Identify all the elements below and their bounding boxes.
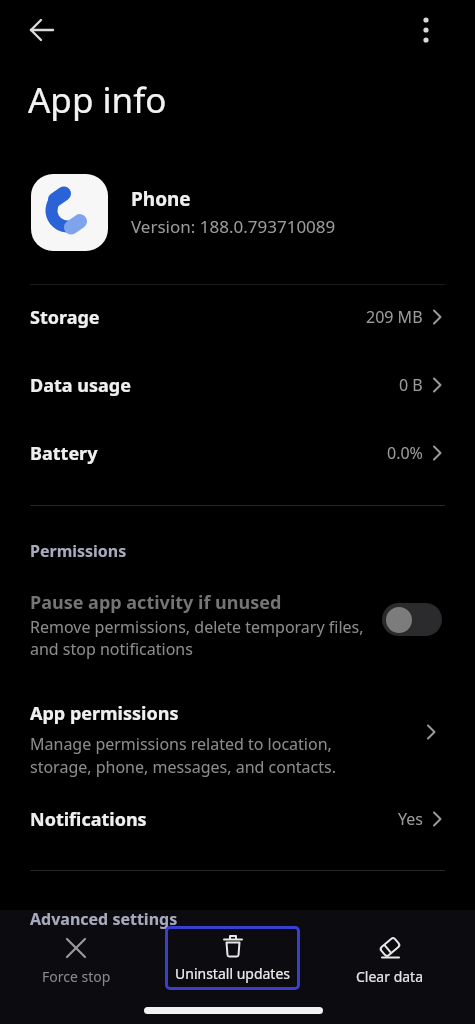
staticText: App info	[28, 76, 167, 124]
staticText: 0.0%	[387, 442, 423, 464]
button[interactable]: Clear data	[330, 936, 450, 986]
staticText: Force stop	[42, 967, 111, 986]
staticText: Pause app activity if unused	[30, 590, 282, 615]
staticText: Clear data	[356, 967, 424, 986]
staticText: Phone	[131, 186, 191, 212]
staticText: Manage permissions related to location,	[30, 733, 332, 755]
staticText: Data usage	[30, 373, 131, 398]
staticText: and stop notifications	[30, 638, 193, 660]
staticText: Advanced settings	[30, 908, 178, 930]
staticText: Battery	[30, 441, 98, 466]
staticText: storage, phone, messages, and contacts.	[30, 756, 337, 778]
staticText: 0 B	[399, 374, 423, 396]
button[interactable]: Battery	[0, 431, 475, 475]
staticText: Version: 188.0.793710089	[131, 215, 336, 238]
button[interactable]: Uninstall updates	[165, 926, 300, 990]
staticText: 209 MB	[366, 306, 423, 328]
staticText: App permissions	[30, 701, 179, 726]
staticText: Uninstall updates	[175, 964, 291, 983]
button[interactable]: Pause app activity if unused	[0, 584, 475, 660]
button[interactable]: Force stop	[16, 936, 136, 986]
button[interactable]	[420, 16, 432, 44]
button[interactable]: Notifications	[0, 797, 475, 841]
button[interactable]: Storage	[0, 295, 475, 339]
button[interactable]: App permissions	[0, 694, 475, 780]
staticText: Yes	[398, 808, 423, 830]
staticText: Remove permissions, delete temporary fil…	[30, 616, 364, 638]
staticText: Permissions	[30, 540, 127, 562]
button[interactable]	[28, 16, 56, 44]
staticText: Notifications	[30, 807, 147, 832]
button[interactable]: Data usage	[0, 363, 475, 407]
staticText: Storage	[30, 305, 100, 330]
